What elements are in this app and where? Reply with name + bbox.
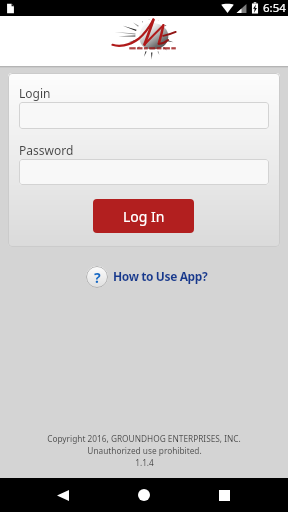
staticText: How to Use App?: [113, 268, 208, 284]
staticText: Login: [19, 85, 51, 101]
staticText: Log In: [123, 207, 165, 226]
staticText: 6:54: [263, 0, 286, 16]
button[interactable]: Back: [53, 485, 73, 505]
button[interactable]: Home: [134, 485, 154, 505]
button[interactable]: Log In: [93, 199, 194, 233]
staticText: 1.1.4: [135, 457, 154, 468]
button[interactable]: [19, 159, 269, 185]
button[interactable]: Recent apps: [214, 485, 234, 505]
staticText: Password: [19, 142, 74, 158]
button[interactable]: [19, 102, 269, 129]
button[interactable]: ?: [86, 266, 208, 288]
staticText: Unauthorized use prohibited.: [87, 445, 202, 456]
staticText: ?: [94, 268, 101, 287]
staticText: Copyright 2016, GROUNDHOG ENTERPRISES, I…: [47, 433, 241, 444]
